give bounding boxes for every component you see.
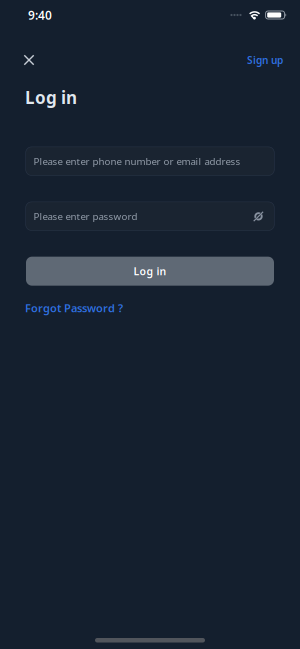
button[interactable]: Please enter password <box>25 202 274 231</box>
staticText: Please enter phone number or email addre… <box>33 155 240 168</box>
button[interactable]: Sign up <box>247 45 283 75</box>
button[interactable]: Show password <box>253 211 263 221</box>
staticText: 9:40 <box>28 7 52 23</box>
button[interactable]: Please enter phone number or email addre… <box>25 147 274 176</box>
button[interactable]: Close <box>15 46 43 74</box>
button[interactable]: Forgot Password ? <box>25 301 123 315</box>
button[interactable]: Log in <box>26 257 274 286</box>
staticText: Log in <box>25 86 77 109</box>
staticText: Please enter password <box>33 210 137 223</box>
staticText: Log in <box>133 264 166 278</box>
staticText: Sign up <box>247 53 283 67</box>
staticText: Forgot Password ? <box>25 301 123 315</box>
